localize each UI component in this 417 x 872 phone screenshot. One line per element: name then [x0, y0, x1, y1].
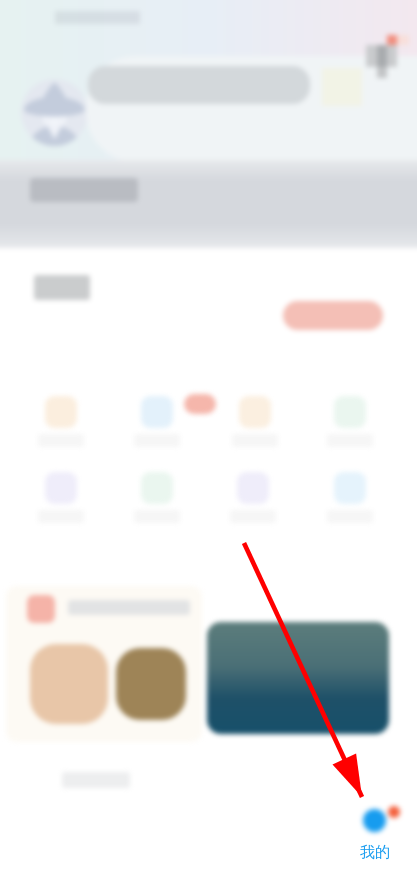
- button[interactable]: Profile avatar: [21, 79, 88, 146]
- button[interactable]: Quick action: [27, 472, 95, 534]
- button[interactable]: [283, 301, 383, 330]
- button[interactable]: Quick action: [221, 396, 289, 458]
- button[interactable]: Quick action: [123, 472, 191, 534]
- button[interactable]: Quick action: [219, 472, 287, 534]
- button[interactable]: Quick action: [123, 396, 191, 458]
- button[interactable]: [0, 160, 417, 252]
- button[interactable]: 我的: [340, 805, 410, 872]
- button[interactable]: Quick action: [316, 396, 384, 458]
- button[interactable]: Quick action: [316, 472, 384, 534]
- button[interactable]: [6, 586, 202, 742]
- button[interactable]: [86, 56, 417, 162]
- button[interactable]: Quick action: [27, 396, 95, 458]
- staticText: 我的: [360, 843, 390, 862]
- button[interactable]: [207, 622, 389, 734]
